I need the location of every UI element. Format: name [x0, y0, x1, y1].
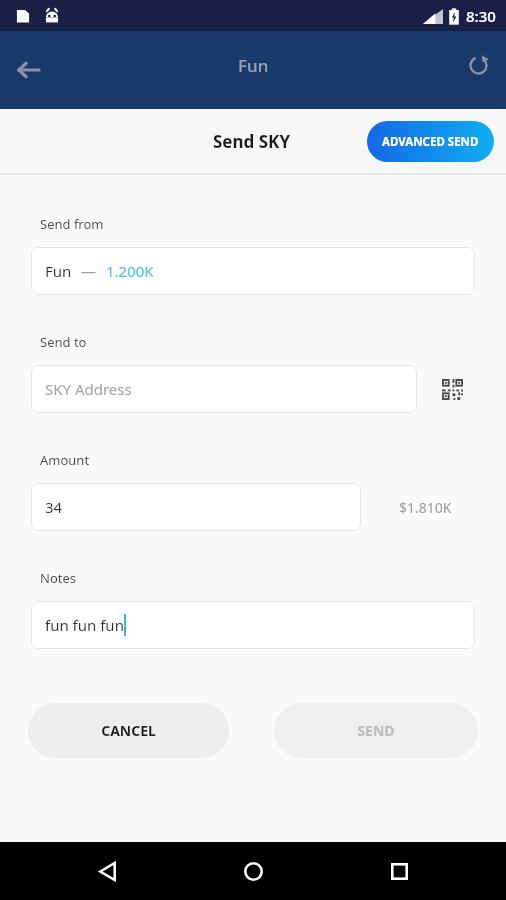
button[interactable]: Home	[231, 849, 275, 893]
staticText: SEND	[357, 721, 395, 740]
staticText: Send to	[40, 333, 87, 351]
button[interactable]: Fun	[31, 247, 475, 295]
staticText: —	[81, 261, 97, 281]
staticText: ADVANCED SEND	[382, 134, 479, 150]
staticText: Send from	[40, 215, 104, 233]
staticText: Send SKY	[213, 130, 291, 153]
button[interactable]: Recent apps	[377, 849, 421, 893]
button[interactable]: SKY Address	[31, 365, 417, 413]
staticText: $1.810K	[399, 498, 452, 517]
staticText: 8:30	[466, 6, 496, 26]
staticText: SKY Address	[45, 379, 132, 399]
button[interactable]: ADVANCED SEND	[367, 121, 494, 162]
staticText: Amount	[40, 451, 90, 469]
staticText: 34	[45, 497, 63, 517]
button[interactable]: 34	[31, 483, 361, 531]
button[interactable]: Refresh	[458, 45, 498, 85]
staticText: Fun	[238, 54, 269, 77]
staticText: Fun	[45, 261, 72, 281]
staticText: Notes	[40, 569, 76, 587]
button[interactable]: Back	[8, 49, 50, 91]
staticText: CANCEL	[101, 721, 156, 740]
button[interactable]: Back	[85, 849, 129, 893]
button[interactable]: Scan QR code	[437, 374, 467, 404]
button[interactable]: SEND	[274, 703, 478, 758]
staticText: fun fun fun	[45, 615, 124, 635]
button[interactable]: fun fun fun	[31, 601, 475, 649]
button[interactable]: CANCEL	[28, 703, 229, 758]
staticText: 1.200K	[106, 261, 154, 281]
